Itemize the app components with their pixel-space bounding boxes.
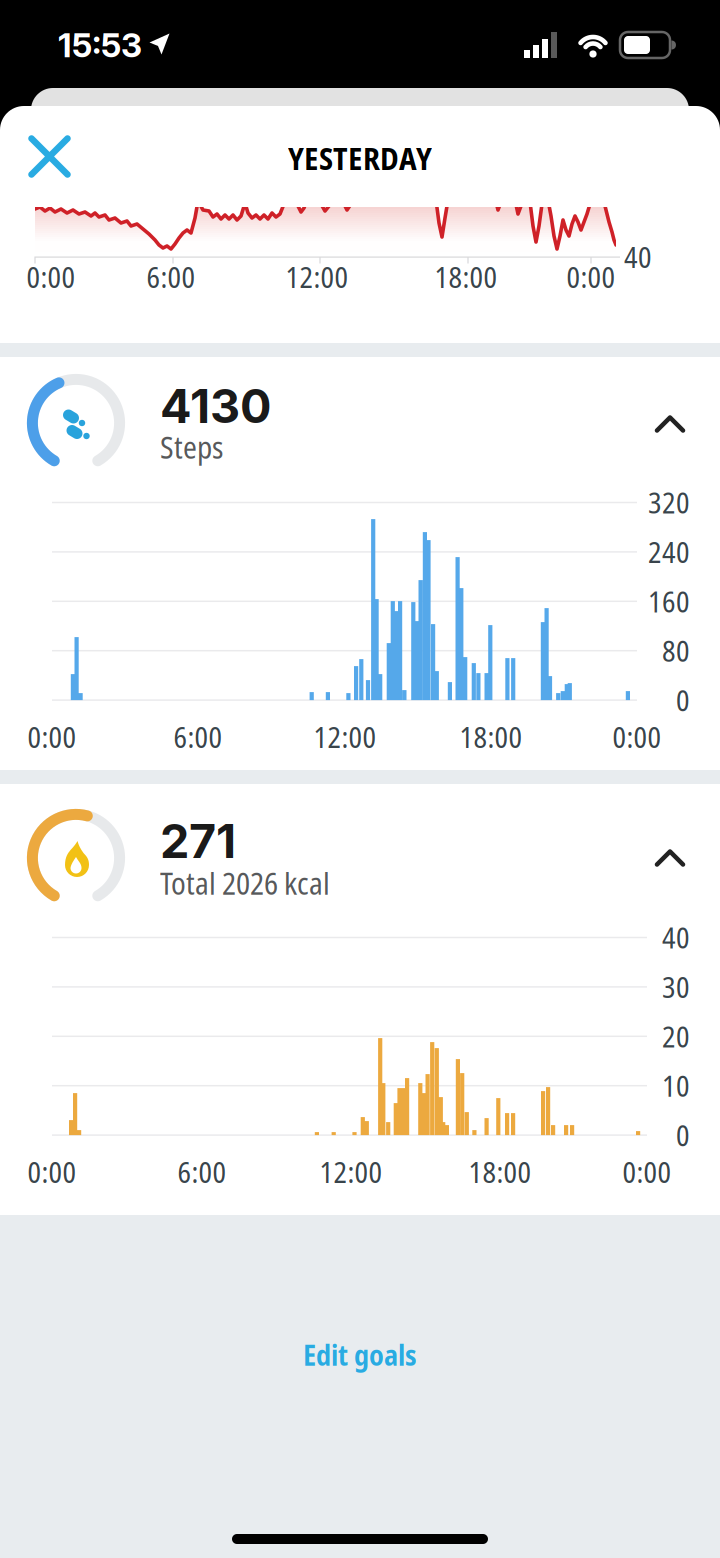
staticText: YESTERDAY: [288, 137, 432, 179]
staticText: 18:00: [468, 1152, 531, 1191]
staticText: 160: [648, 582, 690, 621]
staticText: 240: [648, 532, 690, 571]
staticText: 12:00: [285, 257, 348, 296]
staticText: 0: [676, 1116, 690, 1155]
staticText: 10: [662, 1066, 690, 1105]
staticText: 4130: [160, 378, 271, 434]
staticText: 80: [662, 631, 690, 670]
staticText: 40: [662, 918, 690, 957]
staticText: 12:00: [319, 1152, 382, 1191]
staticText: 271: [160, 813, 236, 869]
staticText: 6:00: [177, 1152, 226, 1191]
button[interactable]: Collapse calories: [640, 836, 700, 880]
staticText: 320: [648, 483, 690, 522]
staticText: 6:00: [146, 257, 195, 296]
staticText: 6:00: [173, 717, 222, 756]
staticText: 0:00: [622, 1152, 671, 1191]
button[interactable]: Collapse steps: [640, 402, 700, 446]
staticText: 20: [662, 1017, 690, 1056]
staticText: Total 2026 kcal: [160, 863, 330, 903]
staticText: 12:00: [313, 717, 376, 756]
staticText: 0:00: [26, 257, 75, 296]
staticText: 30: [662, 967, 690, 1006]
staticText: 0: [676, 681, 690, 720]
staticText: 0:00: [566, 257, 615, 296]
staticText: 0:00: [27, 717, 76, 756]
button[interactable]: Close: [27, 134, 71, 178]
button[interactable]: Edit goals: [240, 1325, 480, 1385]
staticText: 18:00: [434, 257, 497, 296]
staticText: Steps: [160, 427, 223, 467]
staticText: 0:00: [612, 717, 661, 756]
staticText: 0:00: [27, 1152, 76, 1191]
staticText: 40: [624, 237, 652, 276]
staticText: Edit goals: [303, 1336, 417, 1374]
staticText: 18:00: [459, 717, 522, 756]
staticText: 15:53: [58, 25, 142, 65]
